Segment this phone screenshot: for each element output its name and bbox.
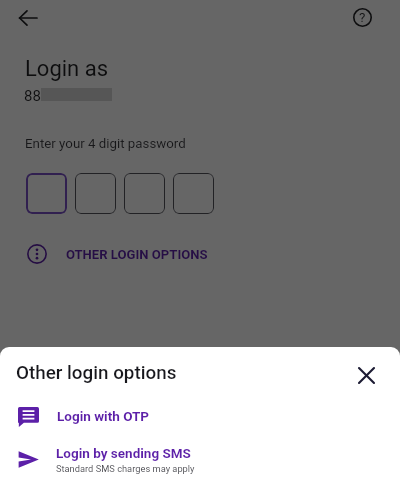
button[interactable]: Close	[351, 360, 381, 390]
button[interactable]: Back	[12, 2, 44, 34]
button[interactable]	[124, 173, 165, 214]
button[interactable]: Help	[346, 1, 378, 33]
staticText: Login by sending SMS	[56, 445, 191, 461]
staticText: Login as	[25, 56, 109, 82]
staticText: Login with OTP	[57, 408, 149, 424]
staticText: Other login options	[16, 362, 177, 384]
staticText: 88	[24, 87, 41, 105]
staticText: ?	[359, 9, 366, 25]
button[interactable]	[26, 173, 67, 214]
button[interactable]	[173, 173, 214, 214]
button[interactable]: Login by sending SMS	[0, 439, 400, 479]
button[interactable]	[75, 173, 116, 214]
staticText: OTHER LOGIN OPTIONS	[66, 247, 208, 262]
button[interactable]: OTHER LOGIN OPTIONS	[27, 241, 208, 267]
button[interactable]: Login with OTP	[0, 399, 400, 433]
staticText: Standard SMS charges may apply	[56, 463, 195, 474]
staticText: Enter your 4 digit password	[25, 136, 186, 152]
